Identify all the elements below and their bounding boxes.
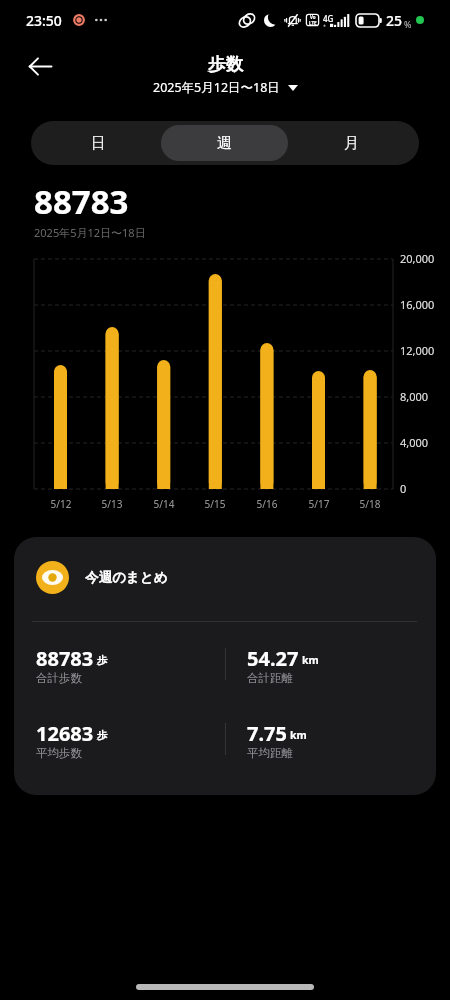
staticText: 2025年5月12日〜18日 (153, 79, 280, 96)
staticText: km (302, 653, 319, 667)
staticText: 88783 (36, 645, 94, 672)
staticText: 7.75 (247, 720, 287, 747)
staticText: 日 (91, 134, 106, 153)
staticText: 歩 (97, 654, 108, 667)
staticText: 12683 (36, 720, 94, 747)
staticText: 5/18 (348, 497, 392, 511)
staticText: 合計距離 (247, 671, 293, 685)
staticText: 4,000 (400, 435, 429, 450)
staticText: 週 (217, 134, 232, 153)
staticText: 5/14 (142, 497, 186, 511)
button[interactable]: 月 (288, 125, 415, 161)
button[interactable]: Back (18, 44, 62, 88)
staticText: 5/16 (245, 497, 289, 511)
staticText: % (404, 18, 412, 30)
staticText: km (290, 728, 307, 742)
staticText: 歩 (97, 729, 108, 742)
staticText: 5/12 (39, 497, 83, 511)
button[interactable]: 週 (161, 125, 288, 161)
staticText: 平均歩数 (36, 746, 82, 760)
staticText: 合計歩数 (36, 671, 82, 685)
staticText: 歩数 (208, 53, 243, 75)
staticText: 5/15 (193, 497, 237, 511)
staticText: 25 (386, 11, 403, 30)
staticText: 平均距離 (247, 746, 293, 760)
button[interactable]: 日 (35, 125, 161, 161)
staticText: 0 (400, 481, 407, 496)
staticText: 8,000 (400, 389, 429, 404)
staticText: 5/13 (90, 497, 134, 511)
staticText: 16,000 (400, 297, 435, 312)
staticText: LTE (309, 20, 317, 26)
staticText: 今週のまとめ (85, 569, 168, 586)
staticText: 20,000 (400, 251, 435, 266)
staticText: 54.27 (247, 645, 299, 672)
staticText: 23:50 (26, 11, 62, 30)
staticText: 5/17 (297, 497, 341, 511)
staticText: Vo (310, 14, 316, 20)
staticText: 2025年5月12日〜18日 (34, 225, 146, 240)
button[interactable]: 2025年5月12日〜18日 (149, 77, 302, 98)
staticText: 88783 (34, 179, 129, 224)
staticText: 4G (323, 13, 334, 24)
staticText: 月 (344, 134, 359, 153)
staticText: 12,000 (400, 343, 435, 358)
